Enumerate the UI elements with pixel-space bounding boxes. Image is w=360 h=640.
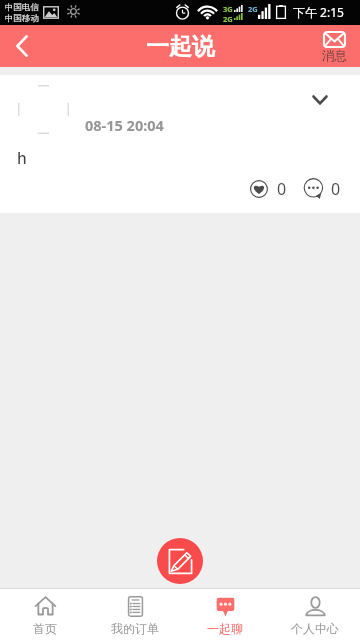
button[interactable]: Expand	[302, 85, 338, 115]
staticText: 0	[331, 178, 341, 200]
button[interactable]: 一起聊	[180, 589, 270, 640]
staticText: 0	[277, 178, 287, 200]
staticText: 下午 2:15	[293, 4, 344, 20]
staticText: 我的订单	[111, 621, 159, 636]
staticText: 3G	[223, 4, 233, 14]
button[interactable]: Messages	[314, 25, 360, 67]
staticText: h	[17, 147, 27, 168]
staticText: 个人中心	[291, 621, 339, 636]
staticText: 一起说	[146, 32, 215, 61]
staticText: 2G	[248, 4, 258, 14]
button[interactable]: 08-15 20:04	[0, 75, 360, 213]
staticText: 中国移动	[5, 13, 39, 24]
staticText: 中国电信	[5, 2, 39, 13]
staticText: 一起聊	[207, 621, 243, 636]
staticText: 08-15 20:04	[85, 115, 164, 135]
button[interactable]: New post	[157, 538, 203, 584]
button[interactable]: 0	[244, 174, 293, 204]
staticText: 消息	[322, 48, 347, 64]
button[interactable]: 个人中心	[270, 589, 360, 640]
button[interactable]: 首页	[0, 589, 90, 640]
button[interactable]: 0	[298, 174, 347, 204]
staticText: 首页	[33, 621, 57, 636]
button[interactable]: Back	[0, 25, 44, 67]
button[interactable]: 我的订单	[90, 589, 180, 640]
staticText: 2G	[223, 14, 233, 24]
